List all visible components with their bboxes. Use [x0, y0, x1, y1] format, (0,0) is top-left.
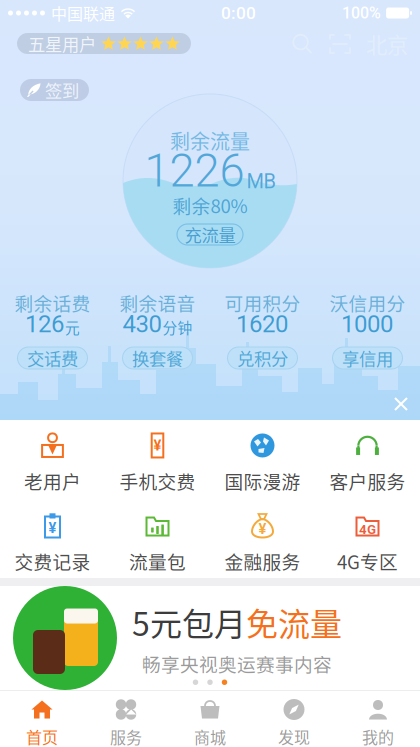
staticText: 畅享央视奥运赛事内容 [142, 650, 332, 677]
button[interactable]: 服务 [84, 699, 168, 747]
staticText: 商城 [194, 725, 226, 747]
staticText: 交话费 [27, 345, 78, 371]
button[interactable]: 签到 [20, 79, 89, 101]
staticText: 元 [65, 316, 80, 338]
button[interactable]: ¥ [105, 432, 210, 494]
button[interactable]: 老用户 [0, 432, 105, 494]
staticText: 剩余80% [172, 191, 247, 218]
button[interactable]: 交话费 [17, 347, 87, 369]
staticText: 5元包月 [132, 599, 246, 645]
staticText: 换套餐 [132, 345, 183, 371]
staticText: 430 [122, 310, 161, 338]
button[interactable]: 发现 [252, 699, 336, 747]
staticText: ¥ [258, 520, 266, 538]
staticText: 分钟 [162, 316, 192, 338]
staticText: 沃信用分 [329, 289, 405, 316]
staticText: 服务 [110, 725, 142, 747]
staticText: 充流量 [184, 222, 235, 247]
staticText: 交费记录 [14, 547, 90, 574]
button[interactable]: 商城 [168, 699, 252, 747]
staticText: 老用户 [24, 467, 81, 494]
button[interactable]: 换套餐 [122, 347, 192, 369]
staticText: ¥ [48, 519, 56, 537]
button[interactable]: 享信用 [332, 347, 402, 369]
staticText: 剩余话费 [14, 289, 90, 316]
staticText: 享信用 [342, 345, 393, 371]
staticText: 可用积分 [224, 289, 300, 316]
staticText: 100% [342, 4, 381, 22]
staticText: 中国联通 [51, 1, 115, 25]
staticText: 4G [359, 522, 376, 537]
staticText: 签到 [45, 77, 79, 103]
staticText: 北京 [366, 29, 408, 59]
button[interactable]: 充流量 [177, 224, 243, 245]
button[interactable]: 兑积分 [227, 347, 297, 369]
staticText: 流量包 [129, 547, 186, 574]
staticText: 免流量 [246, 599, 342, 645]
staticText: ¥ [153, 437, 161, 454]
staticText: 1000 [341, 310, 393, 338]
button[interactable]: 国际漫游 [210, 432, 315, 494]
staticText: 我的 [362, 725, 394, 747]
staticText: 五星用户 [28, 31, 96, 56]
button[interactable]: 关闭 [387, 390, 415, 418]
staticText: 首页 [26, 725, 58, 747]
button[interactable]: 5元包月 [0, 586, 420, 690]
staticText: 兑积分 [237, 345, 288, 371]
button[interactable]: ¥ [0, 512, 105, 574]
staticText: 金融服务 [224, 547, 300, 574]
button[interactable]: 客户服务 [315, 432, 420, 494]
button[interactable]: 我的 [336, 699, 420, 747]
staticText: 国际漫游 [224, 467, 300, 494]
button[interactable]: ¥ [210, 512, 315, 574]
staticText: 4G专区 [337, 547, 398, 574]
staticText: 发现 [278, 725, 310, 747]
button[interactable]: 首页 [0, 699, 84, 747]
staticText: 1620 [236, 310, 288, 338]
button[interactable]: 流量包 [105, 512, 210, 574]
staticText: 剩余语音 [119, 289, 195, 316]
staticText: 1226 [144, 144, 244, 197]
staticText: MB [246, 170, 275, 193]
staticText: 手机交费 [119, 467, 195, 494]
staticText: 客户服务 [329, 467, 405, 494]
staticText: 0:00 [221, 3, 256, 23]
staticText: 剩余流量 [170, 126, 250, 155]
button[interactable]: 五星用户 [17, 33, 191, 54]
staticText: 126 [25, 310, 64, 338]
button[interactable]: 4G [315, 512, 420, 574]
button[interactable]: 北京 [363, 34, 411, 54]
